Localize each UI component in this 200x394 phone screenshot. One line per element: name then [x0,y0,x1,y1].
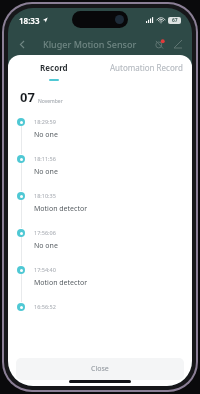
staticText: Kluger Motion Sensor [43,38,137,50]
button[interactable]: 17:56:06 [8,228,192,265]
button[interactable]: 18:10:35 [8,191,192,228]
staticText: 17:54:40 [34,266,56,273]
button[interactable]: Record [8,62,100,81]
staticText: Motion detector [34,278,88,288]
staticText: 18:33 [19,15,40,26]
button[interactable]: 17:54:40 [8,265,192,302]
staticText: No one [34,130,58,140]
staticText: 16:56:52 [34,303,56,310]
staticText: 07 [20,88,35,106]
button[interactable]: 16:56:52 [8,302,192,320]
button[interactable]: Back [14,36,30,52]
button[interactable]: Notifications [151,36,167,52]
staticText: Close [91,364,109,374]
staticText: Automation Record [110,62,183,73]
staticText: Motion detector [34,204,88,214]
button[interactable]: Close [16,358,184,380]
staticText: 67 [172,17,178,24]
staticText: 18:29:59 [34,118,56,125]
staticText: Record [40,62,68,73]
staticText: 18:10:35 [34,192,56,199]
button[interactable]: Automation Record [100,62,192,81]
staticText: No one [34,241,58,251]
button[interactable]: Settings [170,36,186,52]
staticText: 17:56:06 [34,229,56,236]
button[interactable]: 18:11:56 [8,154,192,191]
staticText: November [38,98,63,105]
staticText: No one [34,167,58,177]
button[interactable]: 18:29:59 [8,117,192,154]
staticText: 18:11:56 [34,155,56,162]
